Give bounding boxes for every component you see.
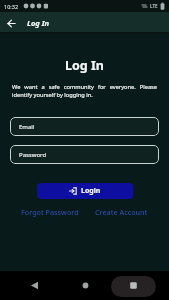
staticText: We want a safe community for everyone. P… [12,83,157,99]
staticText: Forgot Password [21,207,79,217]
staticText: Create Account [95,207,148,217]
button[interactable]: Login [37,183,133,199]
button[interactable]: Email [10,117,159,136]
staticText: Email [19,123,35,131]
staticText: Password [19,151,47,159]
button[interactable] [57,271,113,300]
staticText: LTE [150,3,158,9]
staticText: Log In [27,18,50,28]
staticText: Login [81,186,101,196]
button[interactable]: Forgot Password [19,205,81,219]
staticText: Log In [0,57,169,74]
button[interactable]: Create Account [93,205,150,219]
button[interactable] [113,271,169,300]
button[interactable]: Password [10,145,159,164]
staticText: 10:32 [4,3,19,10]
button[interactable] [4,16,18,30]
button[interactable] [0,271,57,300]
